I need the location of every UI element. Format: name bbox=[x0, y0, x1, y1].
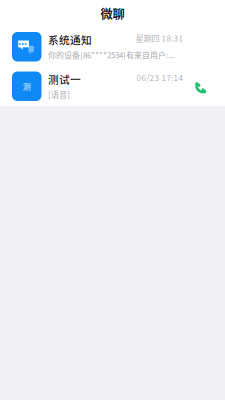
button[interactable]: 系统通知 bbox=[0, 27, 225, 66]
staticText: 测试一 bbox=[48, 71, 81, 87]
button[interactable]: 测 bbox=[0, 66, 225, 106]
staticText: 你的设备(86****2534)有来自用户:... bbox=[48, 49, 174, 60]
staticText: 星期四 18:31 bbox=[135, 32, 183, 44]
staticText: 06/23 17:14 bbox=[136, 71, 183, 83]
staticText: [语音] bbox=[48, 88, 70, 100]
staticText: 测 bbox=[23, 80, 31, 92]
staticText: 系统通知 bbox=[48, 32, 92, 47]
staticText: 微聊 bbox=[100, 5, 124, 22]
